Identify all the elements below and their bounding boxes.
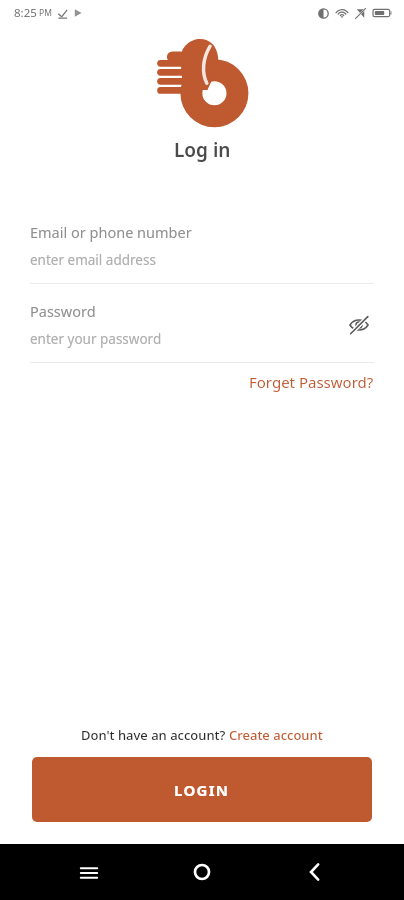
button[interactable]: Recent apps (65, 848, 113, 896)
button[interactable]: Show password (344, 310, 374, 340)
button[interactable]: Password (0, 301, 404, 363)
staticText: enter email address (30, 251, 156, 269)
button[interactable]: Home (178, 848, 226, 896)
button[interactable]: Forget Password? (245, 368, 378, 396)
staticText: Log in (174, 137, 231, 163)
staticText: Forget Password? (249, 372, 374, 392)
staticText: enter your password (30, 330, 162, 348)
staticText: 8:25 (14, 5, 37, 21)
button[interactable]: LOGIN (32, 757, 372, 822)
staticText: Create account (229, 726, 323, 744)
button[interactable]: Create account (229, 726, 323, 744)
staticText: Email or phone number (30, 222, 192, 242)
staticText: Don't have an account? (81, 726, 229, 744)
staticText: LOGIN (174, 780, 230, 800)
button[interactable]: Email or phone number (0, 222, 404, 284)
staticText: Password (30, 301, 96, 321)
staticText: PM (39, 7, 52, 19)
button[interactable]: Back (291, 848, 339, 896)
